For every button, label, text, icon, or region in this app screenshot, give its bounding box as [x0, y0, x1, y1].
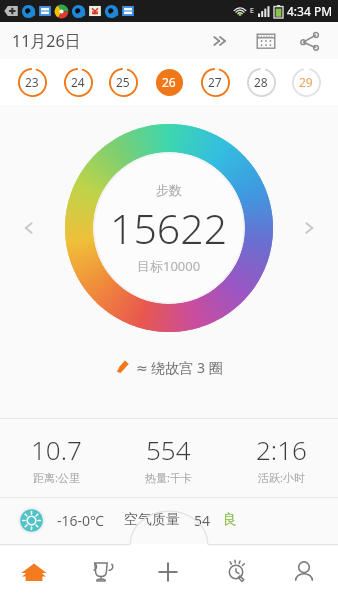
staticText: 活跃:小时 — [258, 470, 305, 485]
button[interactable]: 23 — [12, 62, 52, 102]
staticText: 空气质量 — [124, 511, 180, 529]
button[interactable]: Next — [204, 25, 236, 57]
staticText: 25 — [116, 74, 130, 90]
staticText: 24 — [71, 74, 85, 90]
staticText: 29 — [299, 74, 313, 90]
button[interactable]: Previous day — [12, 211, 46, 245]
staticText: 26 — [162, 74, 176, 90]
staticText: 28 — [254, 74, 268, 90]
button[interactable]: Share — [294, 25, 326, 57]
staticText: 步数 — [156, 182, 182, 198]
button[interactable]: Add — [134, 544, 202, 600]
button[interactable]: Achievements — [67, 544, 134, 600]
button[interactable]: 2:16 — [225, 419, 338, 497]
staticText: 热量:千卡 — [145, 470, 192, 485]
staticText: 距离:公里 — [33, 470, 80, 485]
button[interactable]: 步数 — [65, 124, 273, 332]
staticText: 目标10000 — [137, 257, 201, 275]
staticText: 27 — [208, 74, 222, 90]
button[interactable]: 24 — [58, 62, 98, 102]
button[interactable]: 10.7 — [0, 419, 112, 497]
staticText: 23 — [25, 74, 39, 90]
button[interactable]: Home — [0, 544, 67, 600]
button[interactable]: 26 — [149, 62, 189, 102]
staticText: 15622 — [110, 200, 228, 256]
staticText: 11月26日 — [12, 30, 81, 52]
button[interactable]: 27 — [195, 62, 235, 102]
staticText: 2:16 — [256, 432, 307, 467]
button[interactable]: 554 — [112, 419, 225, 497]
button[interactable]: -16-0℃ — [0, 498, 338, 542]
button[interactable]: Profile — [270, 544, 338, 600]
staticText: 54 — [194, 511, 211, 530]
staticText: 良 — [223, 511, 237, 529]
staticText: ≈ 绕故宫 3 圈 — [136, 358, 223, 377]
button[interactable]: Next day — [292, 211, 326, 245]
button[interactable]: 29 — [286, 62, 326, 102]
button[interactable]: 28 — [241, 62, 281, 102]
staticText: 4:34 PM — [287, 3, 333, 19]
staticText: 10.7 — [31, 432, 82, 467]
staticText: -16-0℃ — [57, 511, 104, 530]
staticText: 554 — [146, 432, 191, 467]
button[interactable]: Discover — [202, 544, 270, 600]
button[interactable]: Calendar — [250, 25, 282, 57]
button[interactable]: 25 — [103, 62, 143, 102]
staticText: E — [250, 6, 254, 16]
